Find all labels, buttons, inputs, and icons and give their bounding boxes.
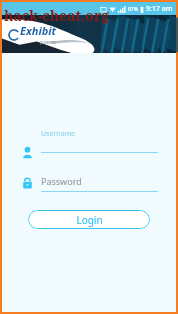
button[interactable]: Password — [2, 175, 176, 192]
staticText: Username — [41, 129, 76, 139]
staticText: power — [40, 38, 57, 46]
staticText: Login — [76, 213, 103, 227]
staticText: 9:17 am — [146, 4, 173, 14]
other: Username — [21, 146, 34, 159]
staticText: hack-cheat.org — [4, 6, 110, 25]
staticText: Password — [41, 175, 82, 187]
staticText: 67% — [128, 6, 138, 13]
staticText: Exhibit — [20, 23, 57, 38]
button[interactable]: Login — [28, 210, 150, 229]
other: Password — [21, 177, 34, 190]
button[interactable]: Username — [2, 146, 176, 159]
